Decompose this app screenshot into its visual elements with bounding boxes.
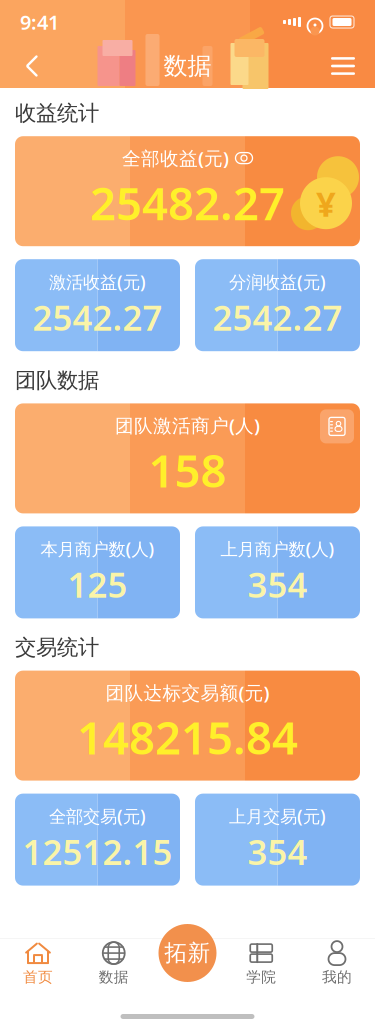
button[interactable]: 激活收益(元): [15, 259, 180, 351]
staticText: 学院: [246, 968, 276, 986]
button[interactable]: 拓新: [158, 924, 216, 982]
staticText: 上月交易(元): [229, 805, 326, 828]
button[interactable]: 学院: [229, 939, 293, 989]
staticText: 354: [247, 561, 307, 607]
button[interactable]: 团队达标交易额(元): [15, 671, 360, 781]
staticText: 数据: [163, 51, 211, 81]
staticText: 2542.27: [212, 294, 342, 340]
staticText: 团队激活商户(人): [115, 413, 260, 438]
button[interactable]: Merchant list: [320, 409, 354, 443]
staticText: 我的: [322, 968, 352, 986]
button[interactable]: 数据: [82, 939, 146, 989]
button[interactable]: 上月商户数(人): [195, 526, 360, 618]
staticText: 12512.15: [22, 829, 172, 875]
button[interactable]: 全部交易(元): [15, 794, 180, 886]
staticText: 25482.27: [90, 172, 285, 233]
staticText: 354: [247, 829, 307, 875]
staticText: 团队数据: [15, 367, 99, 393]
staticText: 2542.27: [32, 294, 162, 340]
staticText: 148215.84: [77, 707, 298, 767]
staticText: 交易统计: [15, 634, 99, 661]
button[interactable]: Back: [10, 44, 54, 88]
staticText: ¥: [316, 180, 336, 226]
button[interactable]: 团队激活商户(人): [15, 403, 360, 513]
button[interactable]: 分润收益(元): [195, 259, 360, 351]
staticText: 数据: [99, 968, 129, 986]
button[interactable]: Menu: [321, 44, 365, 88]
staticText: 全部交易(元): [49, 805, 146, 828]
staticText: 激活收益(元): [49, 270, 146, 293]
button[interactable]: ¥: [15, 136, 360, 246]
staticText: 收益统计: [15, 100, 99, 126]
staticText: 158: [148, 440, 226, 500]
staticText: 本月商户数(人): [40, 537, 154, 560]
button[interactable]: 上月交易(元): [195, 794, 360, 886]
staticText: 团队达标交易额(元): [105, 680, 269, 705]
staticText: 拓新: [164, 939, 210, 967]
staticText: 9:41: [20, 9, 59, 35]
staticText: 上月商户数(人): [220, 537, 334, 560]
staticText: 分润收益(元): [229, 270, 326, 293]
staticText: 125: [67, 561, 127, 607]
staticText: 全部收益(元): [122, 146, 229, 170]
staticText: 首页: [23, 968, 53, 986]
button[interactable]: 我的: [305, 939, 369, 989]
button[interactable]: 本月商户数(人): [15, 526, 180, 618]
button[interactable]: 首页: [6, 939, 70, 989]
